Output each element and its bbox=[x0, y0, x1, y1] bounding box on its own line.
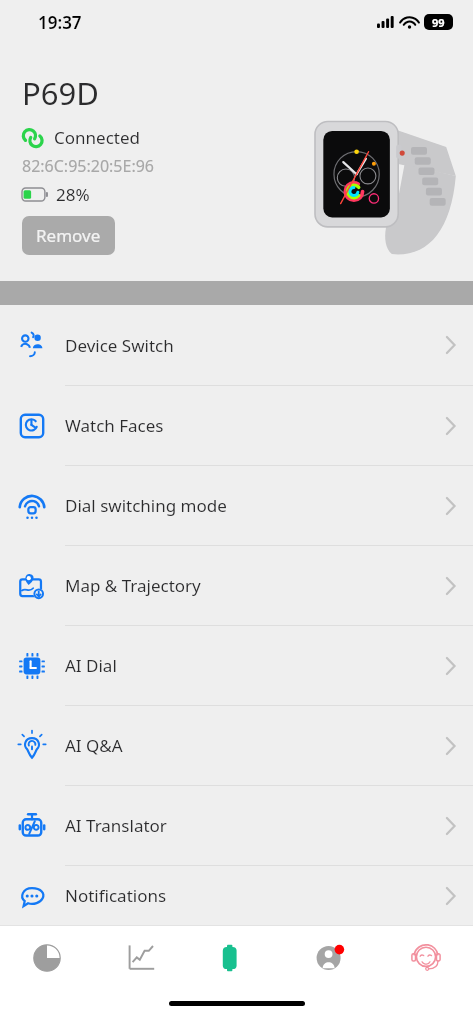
staticText: Map & Trajectory bbox=[65, 574, 201, 597]
staticText: Watch Faces bbox=[65, 414, 164, 437]
staticText: Connected bbox=[54, 126, 140, 149]
staticText: AI Q&A bbox=[65, 734, 123, 757]
button[interactable]: Trends bbox=[94, 926, 188, 990]
button[interactable]: Watch Faces bbox=[0, 386, 473, 465]
staticText: Dial switching mode bbox=[65, 494, 227, 517]
button[interactable]: Notifications bbox=[0, 866, 473, 925]
staticText: Remove bbox=[36, 224, 101, 247]
staticText: 82:6C:95:20:5E:96 bbox=[22, 155, 154, 177]
staticText: 28% bbox=[56, 183, 90, 206]
button[interactable]: Remove bbox=[22, 216, 115, 255]
button[interactable]: Dial switching mode bbox=[0, 466, 473, 545]
staticText: AI Dial bbox=[65, 654, 117, 677]
button[interactable]: Device bbox=[188, 926, 283, 990]
button[interactable]: Device Switch bbox=[0, 305, 473, 385]
button[interactable]: AI Q&A bbox=[0, 706, 473, 785]
staticText: Device Switch bbox=[65, 334, 174, 357]
button[interactable]: AI Dial bbox=[0, 626, 473, 705]
button[interactable]: Map & Trajectory bbox=[0, 546, 473, 625]
button[interactable]: Profile bbox=[283, 926, 378, 990]
button[interactable]: Support bbox=[378, 926, 473, 990]
staticText: P69D bbox=[22, 72, 99, 114]
staticText: Notifications bbox=[65, 884, 167, 907]
staticText: AI Translator bbox=[65, 814, 167, 837]
button[interactable]: AI Translator bbox=[0, 786, 473, 865]
staticText: 99 bbox=[432, 15, 445, 30]
button[interactable]: Statistics bbox=[0, 926, 94, 990]
staticText: 19:37 bbox=[38, 11, 82, 34]
